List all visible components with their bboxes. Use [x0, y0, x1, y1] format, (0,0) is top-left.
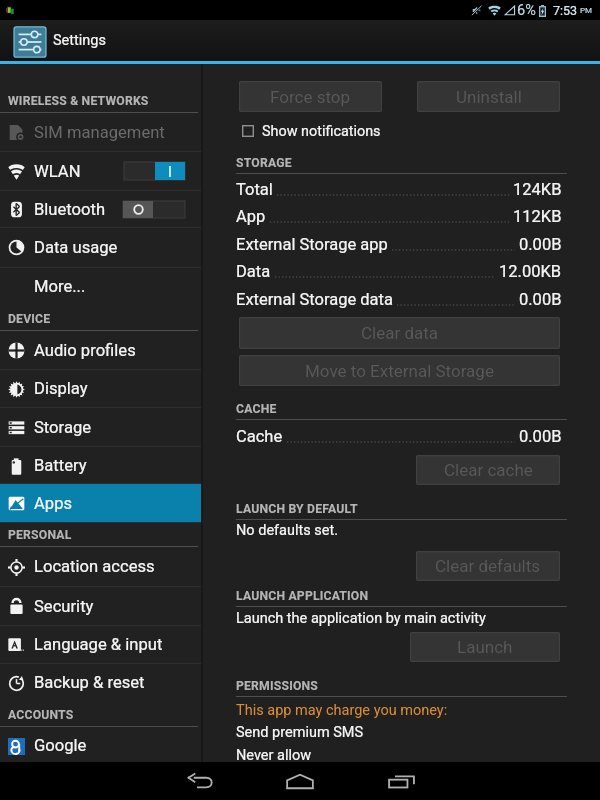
staticText: Force stop — [270, 87, 351, 107]
button[interactable]: Total — [236, 180, 562, 202]
button[interactable]: Move to External Storage — [239, 355, 560, 386]
staticText: Apps — [34, 494, 73, 513]
button[interactable]: Settings — [0, 20, 600, 61]
button[interactable]: Display — [0, 370, 201, 407]
staticText: Data usage — [34, 238, 118, 257]
staticText: 0.00B — [519, 290, 562, 309]
staticText: Move to External Storage — [305, 361, 494, 381]
button[interactable]: Apps — [0, 484, 201, 522]
staticText: Backup & reset — [34, 673, 145, 692]
staticText: Display — [34, 379, 88, 398]
staticText: Audio profiles — [34, 341, 136, 360]
staticText: 7:53 — [553, 3, 578, 18]
button[interactable]: Google — [0, 727, 201, 764]
staticText: Storage — [34, 418, 92, 437]
staticText: Settings — [53, 32, 106, 49]
button[interactable]: Bluetooth — [0, 191, 201, 227]
staticText: App — [236, 207, 266, 226]
staticText: LAUNCH BY DEFAULT — [236, 502, 358, 516]
button[interactable]: Storage — [0, 408, 201, 446]
staticText: 0.00B — [519, 235, 562, 254]
button[interactable]: Recent apps — [363, 762, 439, 800]
staticText: CACHE — [236, 402, 277, 416]
staticText: Security — [34, 597, 94, 616]
staticText: Never allow — [236, 747, 312, 764]
staticText: LAUNCH APPLICATION — [236, 589, 369, 603]
staticText: Launch — [457, 637, 513, 657]
button[interactable]: Clear cache — [416, 455, 560, 485]
button[interactable]: Battery — [0, 447, 201, 484]
staticText: 6% — [517, 2, 536, 19]
staticText: External Storage app — [236, 235, 388, 254]
button[interactable]: More... — [0, 268, 201, 305]
staticText: Bluetooth — [34, 200, 106, 219]
button[interactable]: Clear data — [239, 317, 560, 349]
staticText: PERSONAL — [8, 528, 72, 542]
button[interactable]: Cache — [236, 427, 562, 449]
staticText: ACCOUNTS — [8, 708, 74, 722]
button[interactable]: Home — [262, 762, 338, 800]
staticText: WIRELESS & NETWORKS — [8, 94, 149, 108]
staticText: Location access — [34, 557, 155, 576]
staticText: SIM management — [34, 123, 165, 142]
staticText: DEVICE — [8, 312, 51, 326]
staticText: More... — [34, 277, 86, 296]
staticText: Clear defaults — [435, 556, 541, 576]
staticText: Language & input — [34, 635, 163, 654]
staticText: External Storage data — [236, 290, 393, 309]
staticText: Send premium SMS — [236, 724, 364, 741]
staticText: This app may charge you money: — [236, 702, 448, 719]
staticText: Clear cache — [444, 460, 533, 480]
button[interactable]: Back — [163, 762, 238, 800]
staticText: 12.00KB — [499, 262, 562, 281]
button[interactable] — [123, 201, 185, 218]
button[interactable]: App — [236, 207, 562, 229]
button[interactable]: Force stop — [239, 81, 382, 112]
staticText: Battery — [34, 456, 87, 475]
button[interactable]: WLAN — [0, 152, 201, 190]
button[interactable]: Uninstall — [417, 81, 560, 112]
staticText: STORAGE — [236, 156, 292, 170]
staticText: Show notifications — [262, 123, 381, 139]
staticText: Cache — [236, 427, 283, 446]
button[interactable]: Language & input — [0, 626, 201, 663]
staticText: PERMISSIONS — [236, 679, 319, 693]
button[interactable] — [124, 162, 185, 180]
button[interactable]: Audio profiles — [0, 331, 201, 369]
staticText: No defaults set. — [236, 522, 339, 539]
staticText: WLAN — [34, 162, 81, 181]
button[interactable]: Show notifications — [242, 123, 442, 139]
staticText: 124KB — [513, 180, 562, 199]
staticText: 112KB — [513, 207, 562, 226]
button[interactable]: Data — [236, 262, 562, 284]
staticText: Uninstall — [456, 87, 522, 107]
staticText: Launch the application by main activity — [236, 610, 486, 627]
staticText: Clear data — [361, 323, 439, 343]
button[interactable]: SIM management — [0, 113, 201, 151]
button[interactable]: Backup & reset — [0, 664, 201, 701]
button[interactable]: Clear defaults — [416, 551, 560, 581]
staticText: Total — [236, 180, 273, 199]
button[interactable]: External Storage data — [236, 290, 562, 312]
staticText: Data — [236, 262, 271, 281]
button[interactable]: External Storage app — [236, 235, 562, 257]
staticText: Google — [34, 736, 87, 755]
button[interactable]: Location access — [0, 547, 201, 586]
button[interactable]: Launch — [410, 632, 560, 662]
staticText: 0.00B — [519, 427, 562, 446]
button[interactable]: Data usage — [0, 228, 201, 266]
staticText: PM — [580, 6, 593, 15]
button[interactable]: Security — [0, 587, 201, 625]
